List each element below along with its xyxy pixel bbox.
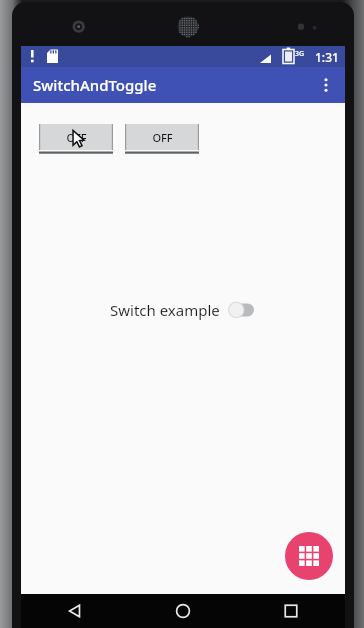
staticText: 3G bbox=[295, 49, 305, 59]
button[interactable]: Recent apps bbox=[237, 594, 345, 628]
staticText: 1:31 bbox=[315, 49, 339, 65]
staticText: SwitchAndToggle bbox=[33, 75, 157, 95]
button[interactable]: Switch example bbox=[106, 296, 261, 324]
staticText: OFF bbox=[66, 130, 87, 145]
button[interactable]: OFF bbox=[39, 124, 113, 153]
staticText: Switch example bbox=[110, 300, 220, 320]
staticText: OFF bbox=[152, 130, 173, 145]
button[interactable]: OFF bbox=[125, 124, 199, 153]
button[interactable]: Home bbox=[129, 594, 237, 628]
button[interactable]: Back bbox=[21, 594, 129, 628]
button[interactable]: More options bbox=[306, 67, 345, 103]
button[interactable]: Apps grid bbox=[285, 532, 333, 580]
